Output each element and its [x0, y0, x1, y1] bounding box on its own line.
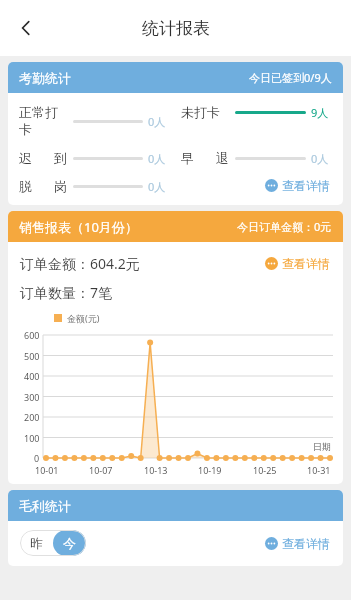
button[interactable]: 今: [53, 530, 86, 556]
staticText: 10-01: [35, 464, 59, 476]
staticText: 订单数量：7笔: [20, 283, 113, 302]
staticText: 0人: [148, 179, 166, 194]
staticText: 10-13: [144, 464, 168, 476]
staticText: 考勤统计: [19, 70, 71, 86]
staticText: 未打卡: [181, 104, 220, 120]
staticText: 500: [24, 350, 40, 362]
staticText: 0人: [148, 114, 166, 129]
staticText: 10-19: [198, 464, 222, 476]
staticText: 销售报表（10月份）: [19, 218, 138, 236]
staticText: 10-07: [89, 464, 113, 476]
staticText: 今: [63, 535, 76, 551]
button[interactable]: 查看详情: [263, 534, 332, 553]
staticText: 400: [24, 370, 40, 382]
staticText: 0人: [311, 151, 329, 166]
staticText: 300: [24, 391, 40, 403]
staticText: 昨: [30, 535, 43, 551]
staticText: 9人: [311, 105, 329, 120]
button[interactable]: 昨: [20, 530, 53, 556]
staticText: 查看详情: [282, 256, 330, 271]
staticText: 日期: [313, 441, 331, 452]
button[interactable]: Back: [6, 8, 46, 48]
staticText: 今日已签到0/9人: [249, 70, 332, 85]
staticText: 脱: [19, 178, 32, 194]
staticText: 订单金额：604.2元: [20, 254, 140, 273]
staticText: 0人: [148, 151, 166, 166]
staticText: 查看详情: [282, 178, 330, 193]
staticText: 金额(元): [67, 312, 100, 324]
staticText: 200: [24, 411, 40, 423]
button[interactable]: 查看详情: [263, 254, 332, 273]
staticText: 查看详情: [282, 536, 330, 551]
staticText: 退: [216, 150, 229, 166]
staticText: 统计报表: [142, 18, 210, 39]
staticText: 今日订单金额：0元: [237, 219, 332, 234]
staticText: 迟: [19, 150, 32, 166]
staticText: 岗: [54, 178, 67, 194]
button[interactable]: 查看详情: [263, 176, 332, 195]
staticText: 0: [34, 452, 40, 464]
staticText: 10-25: [253, 464, 277, 476]
staticText: 10-31: [307, 464, 331, 476]
staticText: 600: [24, 329, 40, 341]
staticText: 早: [181, 150, 194, 166]
staticText: 正常打卡: [19, 104, 67, 138]
staticText: 到: [54, 150, 67, 166]
staticText: 100: [24, 432, 40, 444]
staticText: 毛利统计: [19, 498, 71, 514]
